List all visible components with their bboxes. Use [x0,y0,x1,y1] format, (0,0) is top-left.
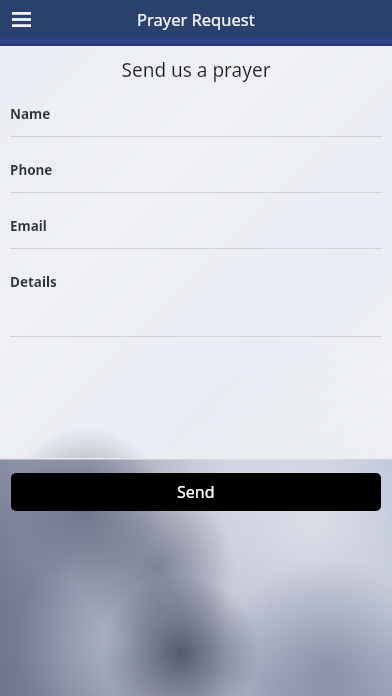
button[interactable]: Send [11,473,381,511]
staticText: Phone [10,161,53,179]
button[interactable]: Open navigation menu [6,4,36,34]
staticText: Name [10,105,51,123]
staticText: Prayer Request [137,8,255,30]
staticText: Send [177,481,215,503]
staticText: Details [10,273,57,291]
staticText: Send us a prayer [0,57,392,83]
staticText: Email [10,217,47,235]
